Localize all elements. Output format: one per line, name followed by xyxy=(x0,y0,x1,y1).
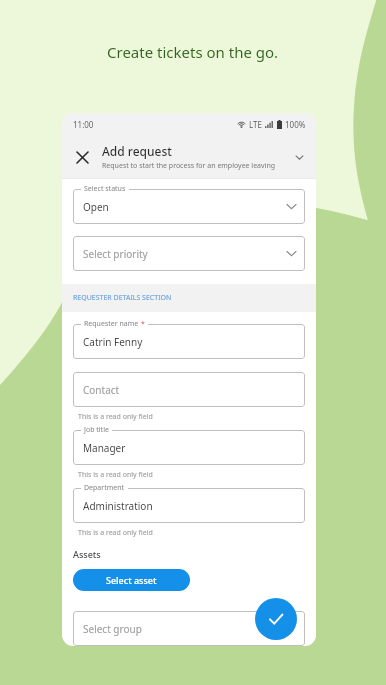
staticText: Select asset xyxy=(106,574,157,586)
button[interactable] xyxy=(73,236,305,271)
staticText: Manager xyxy=(83,441,126,455)
staticText: This is a read only field xyxy=(78,528,153,538)
staticText: Catrin Fenny xyxy=(83,335,143,349)
button[interactable] xyxy=(73,488,305,523)
staticText: Create tickets on the go. xyxy=(107,42,279,62)
staticText: Department xyxy=(84,483,125,493)
button[interactable] xyxy=(73,611,305,646)
staticText: 11:00 xyxy=(73,119,94,130)
staticText: Add request xyxy=(102,143,172,159)
button[interactable] xyxy=(73,430,305,465)
button[interactable]: Expand description xyxy=(292,150,306,164)
staticText: Assets xyxy=(73,548,101,560)
button[interactable]: Submit request xyxy=(255,598,297,640)
staticText: This is a read only field xyxy=(78,470,153,480)
staticText: Contact xyxy=(83,383,120,397)
staticText: Administration xyxy=(83,499,153,513)
staticText: REQUESTER DETAILS SECTION xyxy=(73,293,172,303)
staticText: 100% xyxy=(285,119,306,130)
staticText: * xyxy=(141,319,145,329)
staticText: LTE xyxy=(249,119,262,130)
button[interactable]: Close xyxy=(69,144,95,170)
staticText: Job title xyxy=(84,425,109,435)
staticText: Select priority xyxy=(83,247,148,261)
staticText: Open xyxy=(83,200,109,214)
staticText: This is a read only field xyxy=(78,412,153,422)
staticText: Select group xyxy=(83,622,142,636)
staticText: Select status xyxy=(84,184,126,194)
button[interactable] xyxy=(73,189,305,224)
staticText: Requester name xyxy=(84,319,139,329)
button[interactable]: Select asset xyxy=(73,569,190,591)
staticText: Request to start the process for an empl… xyxy=(102,161,276,171)
button[interactable] xyxy=(73,324,305,359)
button[interactable] xyxy=(73,372,305,407)
